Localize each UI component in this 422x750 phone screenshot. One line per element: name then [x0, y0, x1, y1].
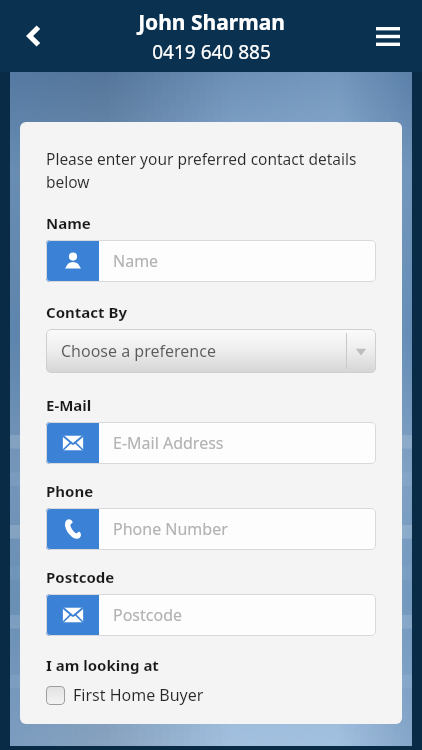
staticText: John Sharman [138, 8, 285, 37]
button[interactable]: Postcode [46, 594, 376, 636]
staticText: Phone [46, 481, 94, 501]
staticText: E-Mail [46, 395, 92, 415]
staticText: Phone Number [113, 518, 228, 540]
staticText: E-Mail Address [113, 432, 224, 454]
staticText: First Home Buyer [73, 684, 204, 706]
button[interactable]: Back [10, 12, 58, 60]
button[interactable]: Menu [364, 12, 412, 60]
staticText: 0419 640 885 [152, 39, 271, 65]
staticText: I am looking at [46, 655, 159, 675]
staticText: Postcode [46, 567, 115, 587]
staticText: Name [46, 213, 91, 233]
button[interactable]: Name [46, 240, 376, 282]
staticText: Name [113, 250, 159, 272]
staticText: Contact By [46, 302, 127, 322]
button[interactable]: E-Mail Address [46, 422, 376, 464]
staticText: Postcode [113, 604, 183, 626]
button[interactable]: Phone Number [46, 508, 376, 550]
button[interactable]: Choose a preference [46, 329, 376, 373]
button[interactable]: First Home Buyer [46, 684, 376, 706]
staticText: Choose a preference [61, 340, 216, 362]
staticText: Please enter your preferred contact deta… [46, 148, 376, 193]
